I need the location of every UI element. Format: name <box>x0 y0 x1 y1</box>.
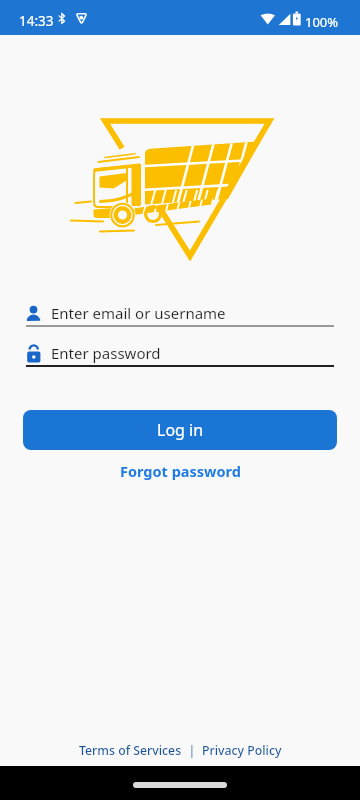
staticText: Enter password <box>51 343 161 363</box>
button[interactable]: Log in <box>23 410 337 450</box>
button[interactable]: Enter password <box>26 343 334 367</box>
button[interactable]: Terms of Services <box>79 742 182 759</box>
staticText: 14:33 <box>19 12 54 30</box>
staticText: Forgot password <box>120 461 241 481</box>
staticText: 100% <box>305 13 339 31</box>
staticText: Terms of Services <box>79 742 182 759</box>
staticText: Log in <box>157 419 204 441</box>
button[interactable]: Privacy Policy <box>202 742 282 759</box>
staticText: Enter email or username <box>51 303 226 323</box>
button[interactable]: Forgot password <box>120 461 241 481</box>
staticText: | <box>182 742 202 759</box>
staticText: Privacy Policy <box>202 742 282 759</box>
button[interactable]: Enter email or username <box>26 303 334 327</box>
